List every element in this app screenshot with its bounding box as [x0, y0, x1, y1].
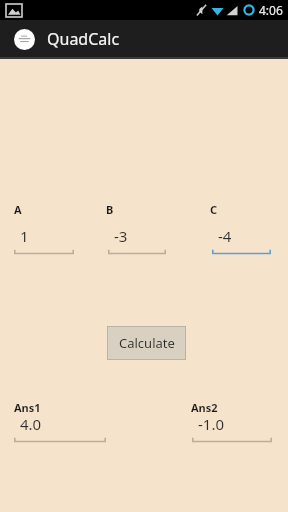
button[interactable]: -1.0 — [192, 413, 272, 443]
staticText: B — [106, 202, 114, 217]
staticText: 4:06 — [259, 2, 283, 18]
staticText: Ans2 — [191, 400, 218, 415]
staticText: -4 — [218, 226, 232, 246]
staticText: QuadCalc — [47, 28, 120, 50]
button[interactable]: Calculate — [107, 326, 186, 360]
button[interactable]: 1 — [14, 225, 74, 255]
staticText: -3 — [114, 226, 128, 246]
staticText: -1.0 — [198, 414, 225, 434]
staticText: Calculate — [119, 334, 175, 352]
button[interactable]: -4 — [212, 225, 271, 255]
staticText: A — [14, 202, 22, 217]
staticText: C — [210, 202, 218, 217]
button[interactable]: -3 — [108, 225, 166, 255]
staticText: 4.0 — [20, 414, 42, 434]
button[interactable]: 4.0 — [14, 413, 106, 443]
staticText: Ans1 — [14, 400, 41, 415]
staticText: 1 — [20, 226, 29, 246]
